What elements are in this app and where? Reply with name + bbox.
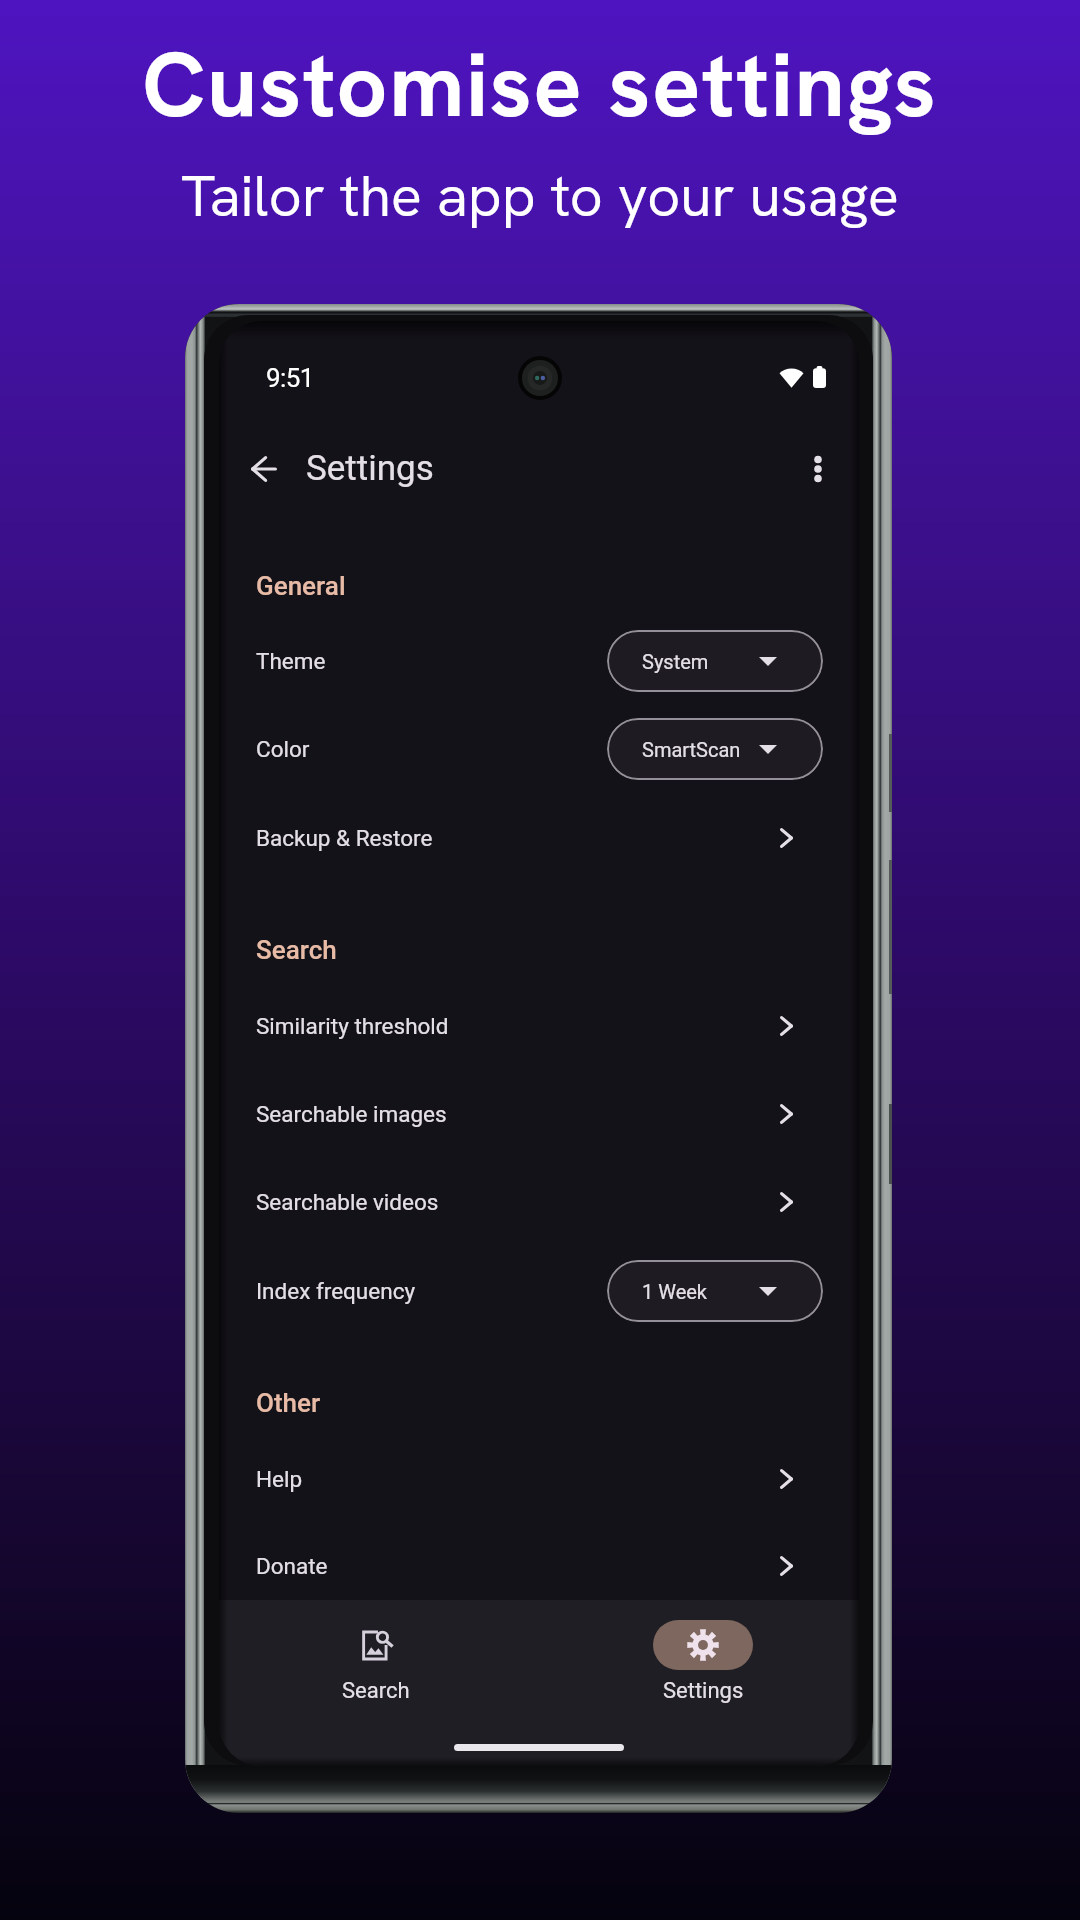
- staticText: Theme: [256, 648, 326, 674]
- staticText: Searchable videos: [256, 1189, 439, 1215]
- button[interactable]: Settings: [543, 1600, 859, 1728]
- staticText: Settings: [306, 448, 434, 489]
- button[interactable]: Searchable images: [219, 1070, 859, 1158]
- staticText: SmartScan: [642, 738, 741, 761]
- staticText: System: [642, 650, 709, 673]
- staticText: Customise settings: [0, 27, 1080, 143]
- staticText: Search: [342, 1678, 410, 1704]
- staticText: General: [256, 571, 346, 601]
- button[interactable]: Color: [219, 705, 859, 793]
- button[interactable]: More options: [790, 441, 846, 497]
- staticText: Other: [256, 1388, 321, 1418]
- staticText: Search: [256, 935, 337, 965]
- button[interactable]: Back: [236, 441, 292, 497]
- button[interactable]: Help: [219, 1435, 859, 1523]
- staticText: Index frequency: [256, 1278, 416, 1304]
- button[interactable]: Index frequency: [219, 1247, 859, 1335]
- staticText: Color: [256, 736, 310, 762]
- staticText: 1 Week: [642, 1280, 707, 1303]
- staticText: Searchable images: [256, 1101, 447, 1127]
- button[interactable]: Search: [219, 1600, 536, 1728]
- staticText: Backup & Restore: [256, 825, 433, 851]
- staticText: Tailor the app to your usage: [0, 158, 1080, 234]
- button[interactable]: Backup & Restore: [219, 794, 859, 882]
- staticText: Similarity threshold: [256, 1013, 449, 1039]
- button[interactable]: Theme: [219, 617, 859, 705]
- staticText: Help: [256, 1466, 303, 1492]
- button[interactable]: Searchable videos: [219, 1158, 859, 1246]
- staticText: Donate: [256, 1553, 328, 1579]
- button[interactable]: Similarity threshold: [219, 982, 859, 1070]
- button[interactable]: Donate: [219, 1522, 859, 1610]
- staticText: 9:51: [266, 363, 314, 393]
- staticText: Settings: [663, 1678, 744, 1704]
